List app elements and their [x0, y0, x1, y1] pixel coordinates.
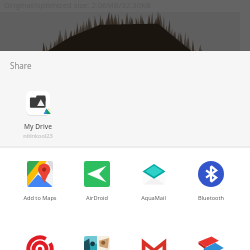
button[interactable]: Photos	[68, 236, 125, 250]
staticText: My Drive	[24, 122, 52, 131]
button[interactable]: AirDroid	[68, 161, 125, 202]
button[interactable]: Files	[182, 236, 239, 250]
button[interactable]: Bluetooth	[182, 161, 239, 202]
button[interactable]: Pocket	[11, 236, 68, 250]
button[interactable]: AquaMail	[125, 161, 182, 202]
staticText: Bluetooth	[198, 194, 224, 202]
staticText: Share	[10, 60, 32, 71]
button[interactable]: Add to Maps	[11, 161, 68, 202]
button[interactable]: Gmail	[125, 236, 182, 250]
staticText: Original/optimized size: 2.06MB/32.30KB	[4, 0, 151, 10]
staticText: AquaMail	[141, 194, 166, 202]
staticText: Add to Maps	[23, 194, 57, 202]
staticText: nitinkool23	[23, 132, 53, 140]
button[interactable]: My Drive	[9, 90, 66, 140]
staticText: AirDroid	[86, 194, 108, 202]
